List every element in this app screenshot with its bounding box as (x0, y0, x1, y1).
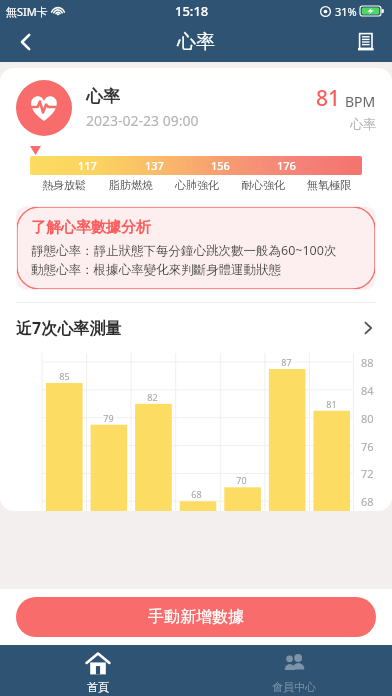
staticText: 會員中心 (272, 680, 316, 694)
staticText: 81 (326, 398, 337, 410)
staticText: 84 (361, 383, 374, 398)
staticText: 176 (277, 158, 296, 173)
staticText: 2023-02-23 09:00 (86, 111, 199, 130)
staticText: 85 (59, 370, 70, 382)
staticText: 近7次心率測量 (16, 317, 122, 339)
staticText: 脂肪燃燒 (109, 178, 153, 192)
staticText: 心率 (350, 116, 376, 132)
staticText: 70 (236, 474, 247, 486)
staticText: 80 (361, 411, 374, 426)
staticText: 68 (191, 488, 202, 500)
staticText: 81 (316, 84, 341, 113)
staticText: 心肺強化 (175, 178, 219, 192)
staticText: 心率 (86, 86, 120, 107)
staticText: 無SIM卡 (6, 4, 48, 19)
staticText: 15:18 (175, 2, 209, 20)
staticText: 了解心率數據分析 (31, 218, 151, 237)
staticText: 88 (361, 355, 374, 370)
staticText: 耐心強化 (241, 178, 285, 192)
staticText: 72 (361, 466, 374, 481)
staticText: 82 (147, 391, 158, 403)
staticText: 76 (361, 439, 374, 454)
button[interactable]: 會員中心 (196, 645, 392, 696)
button[interactable]: 手動新增數據 (16, 597, 376, 637)
staticText: 68 (361, 494, 374, 509)
staticText: 156 (211, 158, 230, 173)
staticText: 手動新增數據 (148, 607, 244, 627)
staticText: 心率 (177, 30, 215, 54)
staticText: 動態心率：根據心率變化來判斷身體運動狀態 (31, 262, 281, 278)
staticText: 87 (281, 356, 292, 368)
staticText: 137 (145, 158, 164, 173)
staticText: 31% (335, 4, 357, 19)
button[interactable]: Records (340, 22, 392, 62)
button[interactable]: 近7次心率測量 (16, 317, 376, 339)
staticText: 無氧極限 (307, 178, 351, 192)
staticText: 首頁 (87, 680, 109, 694)
staticText: 79 (103, 412, 114, 424)
button[interactable]: 首頁 (0, 645, 196, 696)
staticText: 熱身放鬆 (42, 178, 86, 192)
button[interactable]: Back (0, 22, 52, 62)
staticText: 靜態心率：靜止狀態下每分鐘心跳次數一般為60~100次 (31, 242, 337, 259)
staticText: 117 (78, 158, 97, 173)
staticText: BPM (345, 92, 376, 111)
